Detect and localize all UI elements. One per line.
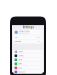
button[interactable]: Music [13,66,43,70]
staticText: Home [36,36,40,38]
staticText: Music [18,67,22,69]
button[interactable]: Wallet [13,62,43,66]
staticText: Bluetooth [15,41,21,42]
staticText: Health [18,59,22,61]
button[interactable]: Wi-Fi [13,35,43,39]
button[interactable]: Photos [13,50,43,54]
staticText: Settings [22,25,33,29]
button[interactable]: Apple Account [13,30,43,35]
staticText: Photos [18,51,23,53]
button[interactable]: Podcasts [13,70,43,74]
staticText: Apple Account [19,30,30,32]
staticText: On [38,41,40,42]
staticText: Podcasts [18,71,25,73]
button[interactable]: Bluetooth [13,39,43,43]
button[interactable]: Health [13,58,43,62]
staticText: iCloud and more [19,32,30,34]
button[interactable]: Camera [13,54,43,58]
staticText: Wi-Fi [15,36,17,38]
staticText: Wallet [18,63,21,65]
staticText: Camera [18,55,24,57]
